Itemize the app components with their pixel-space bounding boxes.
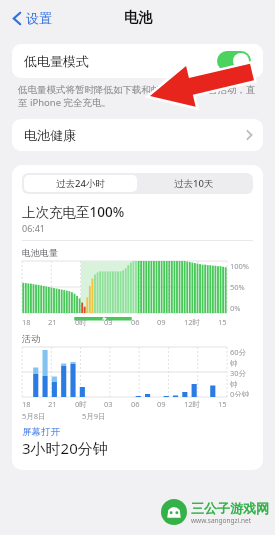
staticText: 过去24小时 [56, 177, 105, 190]
staticText: 低电量模式 [24, 53, 217, 69]
staticText: www.sangongzi.net [191, 516, 252, 525]
button[interactable]: 过去10天 [137, 175, 251, 192]
staticText: 09 [157, 399, 166, 409]
staticText: 18 [22, 317, 31, 327]
staticText: 0% [230, 303, 241, 313]
staticText: 06 [131, 317, 140, 327]
staticText: 5月9日 [82, 411, 106, 421]
staticText: 50% [230, 282, 245, 292]
staticText: 03 [104, 317, 113, 327]
staticText: 12时 [184, 399, 201, 409]
staticText: 电池 [124, 9, 152, 27]
staticText: 电池电量 [22, 247, 58, 258]
button[interactable]: 过去24小时 [24, 175, 137, 192]
staticText: 活动 [22, 333, 40, 344]
staticText: 100% [230, 261, 250, 271]
staticText: 3小时20分钟 [22, 438, 108, 458]
staticText: 30分钟 [230, 368, 253, 389]
staticText: 15 [218, 399, 227, 409]
staticText: 60分钟 [230, 347, 253, 368]
staticText: 18 [22, 399, 31, 409]
staticText: 上次充电至100% [22, 203, 125, 221]
button[interactable]: 电池健康 [12, 119, 263, 151]
staticText: 12时 [184, 317, 201, 327]
staticText: 三公子游戏网 [191, 500, 269, 516]
staticText: 21 [48, 317, 57, 327]
button[interactable]: 设置 [8, 6, 56, 30]
staticText: 屏幕打开 [22, 426, 60, 438]
button[interactable]: 低电量模式 [12, 44, 263, 78]
staticText: 09 [157, 317, 166, 327]
staticText: 21 [48, 399, 57, 409]
button[interactable]: 低电量模式开关 [217, 51, 251, 71]
staticText: 15 [218, 317, 227, 327]
staticText: 电池健康 [24, 127, 246, 143]
staticText: 5月8日 [22, 411, 46, 421]
staticText: 低电量模式将暂时降低如下载和邮件获取等后台活动，直至 iPhone 完全充电。 [18, 84, 257, 109]
staticText: 03 [104, 399, 113, 409]
staticText: 0分钟 [230, 389, 250, 397]
staticText: 0时 [75, 399, 87, 409]
staticText: 0时 [75, 317, 87, 327]
staticText: 过去10天 [174, 177, 214, 190]
staticText: 06 [131, 399, 140, 409]
staticText: 06:41 [22, 222, 46, 234]
staticText: 设置 [26, 10, 52, 26]
